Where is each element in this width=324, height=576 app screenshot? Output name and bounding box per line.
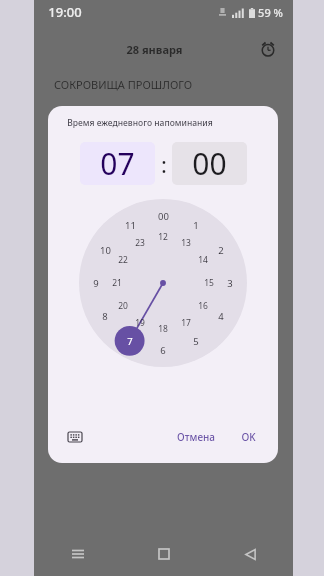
- button[interactable]: 7: [119, 333, 141, 349]
- button[interactable]: 23: [129, 235, 151, 251]
- staticText: 17: [181, 317, 191, 329]
- staticText: 19:00: [48, 3, 82, 21]
- button[interactable]: 13: [175, 235, 197, 251]
- staticText: OK: [241, 430, 256, 444]
- staticText: 21: [112, 277, 122, 289]
- staticText: СОКРОВИЩА ПРОШЛОГО: [54, 77, 192, 92]
- button[interactable]: Back: [207, 532, 293, 576]
- staticText: Отмена: [177, 430, 215, 444]
- staticText: 22: [118, 254, 128, 266]
- button[interactable]: 8: [94, 308, 116, 324]
- button[interactable]: 14: [192, 252, 214, 268]
- staticText: 16: [198, 300, 208, 312]
- button[interactable]: Switch to text input: [63, 425, 87, 449]
- button[interactable]: 21: [106, 275, 128, 291]
- button[interactable]: Recents: [34, 532, 121, 576]
- staticText: 4: [218, 310, 224, 323]
- button[interactable]: 00: [172, 142, 247, 185]
- staticText: 6: [160, 344, 166, 357]
- button[interactable]: Alarm: [255, 36, 281, 62]
- staticText: 7: [127, 335, 133, 348]
- staticText: 15: [204, 277, 214, 289]
- button[interactable]: 12: [152, 229, 174, 245]
- staticText: 28 января: [54, 42, 255, 57]
- button[interactable]: 2: [210, 242, 232, 258]
- staticText: 9: [93, 277, 99, 290]
- button[interactable]: 15: [198, 275, 220, 291]
- staticText: 1: [193, 219, 199, 232]
- staticText: 00: [192, 143, 227, 184]
- staticText: 10: [100, 244, 111, 257]
- staticText: 2: [218, 244, 224, 257]
- staticText: 19: [135, 317, 145, 329]
- staticText: ...показать другим, как к нам в сухой: [54, 108, 233, 122]
- button[interactable]: 19: [129, 315, 151, 331]
- staticText: Время ежедневного напоминания: [67, 117, 213, 129]
- button[interactable]: 6: [152, 342, 174, 358]
- staticText: :: [161, 149, 167, 179]
- staticText: 20: [118, 300, 128, 312]
- staticText: 13: [181, 237, 191, 249]
- staticText: 12: [158, 231, 168, 243]
- button[interactable]: 9: [85, 275, 107, 291]
- button[interactable]: 17: [175, 315, 197, 331]
- staticText: 23: [135, 237, 145, 249]
- staticText: 5: [193, 335, 199, 348]
- button[interactable]: Home: [121, 532, 207, 576]
- staticText: 14: [198, 254, 208, 266]
- staticText: 3: [227, 277, 233, 290]
- button[interactable]: Отмена: [169, 423, 223, 451]
- button[interactable]: 1: [185, 217, 207, 233]
- staticText: 11: [125, 219, 136, 232]
- staticText: 8: [102, 310, 108, 323]
- button[interactable]: 4: [210, 308, 232, 324]
- button[interactable]: 16: [192, 298, 214, 314]
- button[interactable]: 3: [219, 275, 241, 291]
- button[interactable]: 10: [94, 242, 116, 258]
- button[interactable]: 22: [112, 252, 134, 268]
- staticText: 18: [158, 323, 168, 335]
- button[interactable]: 20: [112, 298, 134, 314]
- button[interactable]: 11: [119, 217, 141, 233]
- button[interactable]: 00: [152, 208, 174, 224]
- button[interactable]: 07: [80, 142, 155, 185]
- staticText: 07: [100, 143, 135, 184]
- staticText: 59 %: [258, 5, 283, 20]
- staticText: 00: [158, 210, 169, 223]
- button[interactable]: 5: [185, 333, 207, 349]
- button[interactable]: 18: [152, 321, 174, 337]
- button[interactable]: OK: [233, 423, 264, 451]
